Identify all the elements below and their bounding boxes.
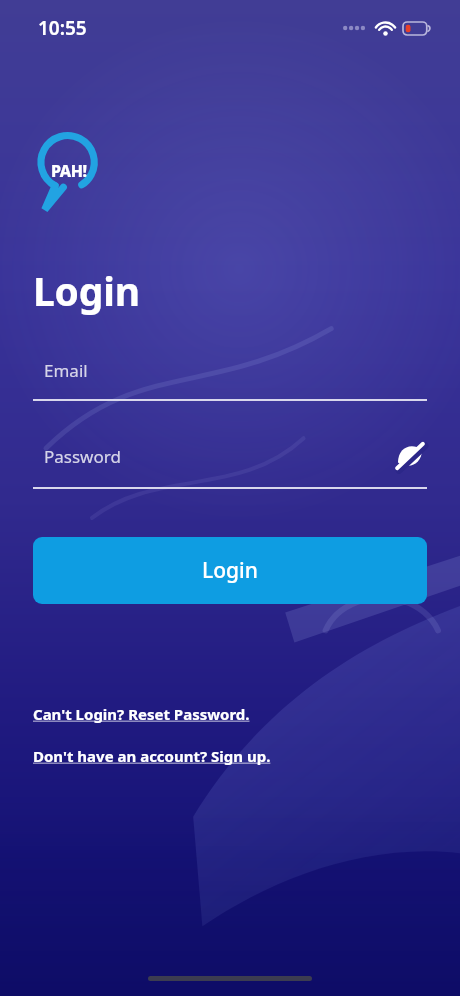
- button[interactable]: Show password: [393, 439, 427, 473]
- button[interactable]: Don't have an account? Sign up.: [33, 746, 271, 766]
- button[interactable]: Login: [33, 537, 427, 604]
- button[interactable]: Can't Login? Reset Password.: [33, 704, 250, 724]
- staticText: Don't have an account? Sign up.: [33, 746, 271, 766]
- button[interactable]: Email: [33, 359, 427, 401]
- staticText: Login: [33, 264, 140, 317]
- staticText: Login: [202, 556, 258, 585]
- staticText: Password: [44, 445, 121, 468]
- staticText: 10:55: [38, 15, 87, 41]
- staticText: Can't Login? Reset Password.: [33, 704, 250, 724]
- staticText: Email: [44, 359, 88, 382]
- staticText: PAH!: [51, 160, 87, 182]
- button[interactable]: Password: [33, 439, 427, 489]
